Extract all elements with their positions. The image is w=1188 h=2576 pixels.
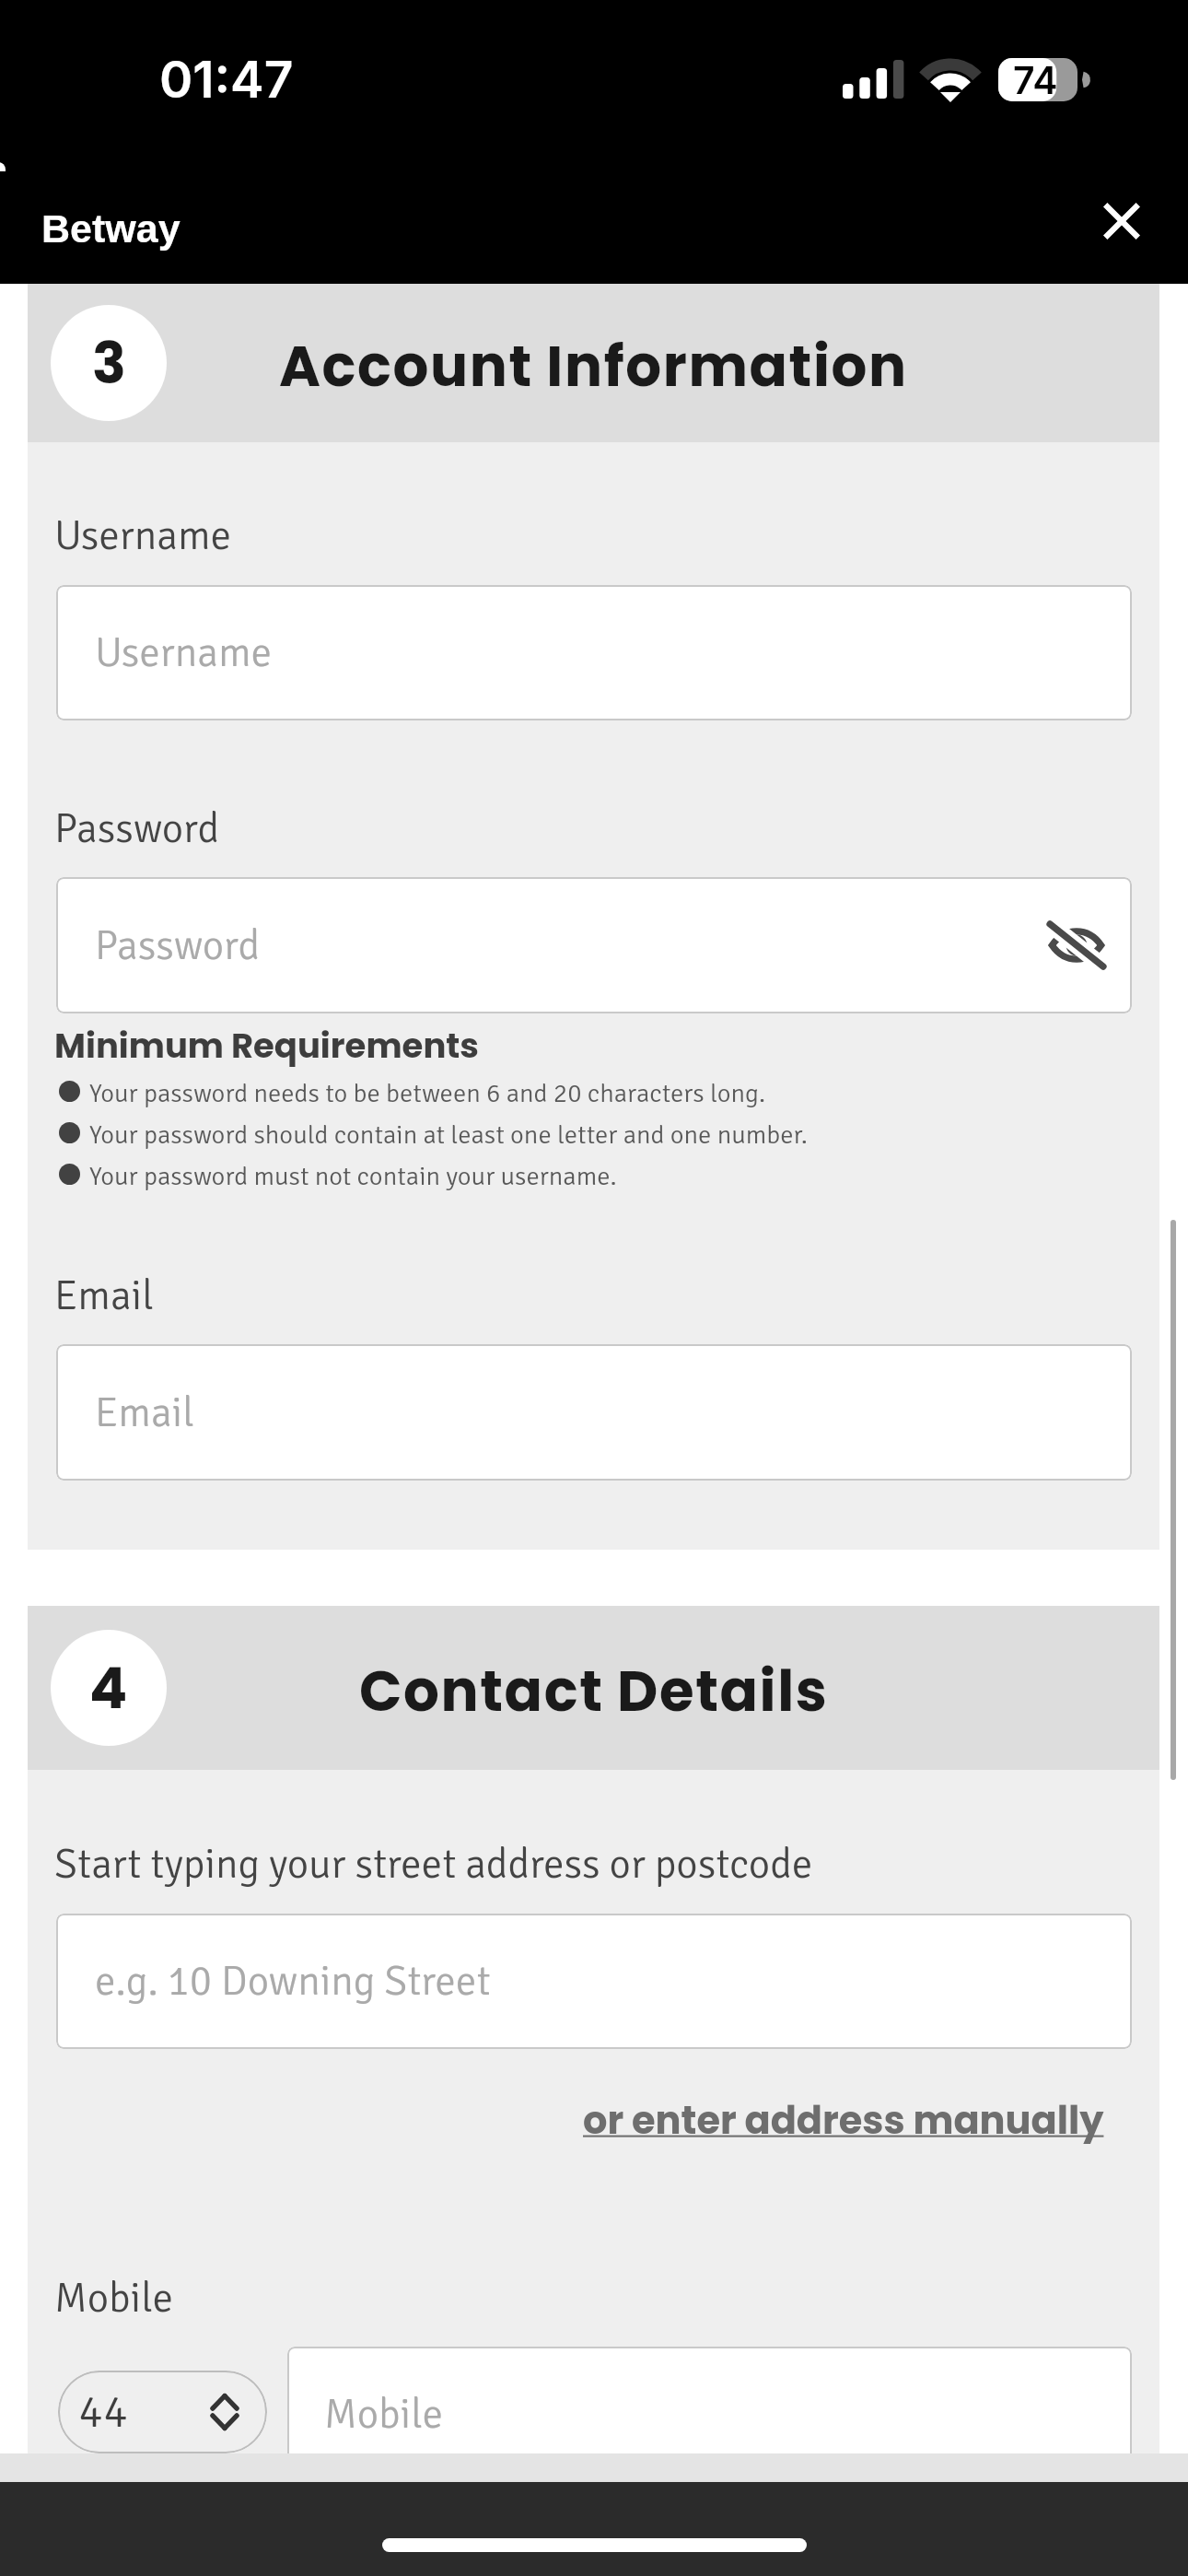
button[interactable]: e.g. 10 Downing Street [56,1914,1132,2049]
staticText: Username [54,510,232,561]
staticText: 74 [1013,57,1058,103]
staticText: Username [95,627,273,678]
staticText: Mobile [54,2273,174,2324]
button[interactable]: or enter address manually [583,2093,1104,2147]
staticText: Email [95,1388,194,1438]
staticText: Minimum Requirements [54,1022,479,1070]
staticText: Contact Details [359,1652,829,1730]
staticText: 3 [92,324,126,403]
button[interactable]: Username [56,585,1132,720]
staticText: Mobile [324,2389,444,2440]
staticText: Betway [41,206,181,251]
button[interactable]: 44 [58,2371,267,2453]
staticText: 44 [78,2383,129,2441]
button[interactable]: Show password [1043,912,1110,978]
staticText: 4 [89,1649,128,1727]
button[interactable]: Email [56,1344,1132,1481]
staticText: Your password should contain at least on… [89,1118,808,1151]
button[interactable]: Mobile [287,2347,1132,2482]
staticText: e.g. 10 Downing Street [95,1956,491,2007]
staticText: Your password needs to be between 6 and … [89,1077,766,1109]
button[interactable]: Password [56,877,1132,1013]
staticText: Start typing your street address or post… [54,1839,813,1890]
staticText: Email [54,1270,154,1321]
button[interactable]: Close [1079,179,1164,263]
staticText: or enter address manually [583,2093,1104,2147]
staticText: Password [54,803,220,854]
staticText: Account Information [279,327,908,405]
staticText: 01:47 [159,49,294,111]
staticText: Password [95,920,261,971]
staticText: Your password must not contain your user… [89,1160,617,1192]
